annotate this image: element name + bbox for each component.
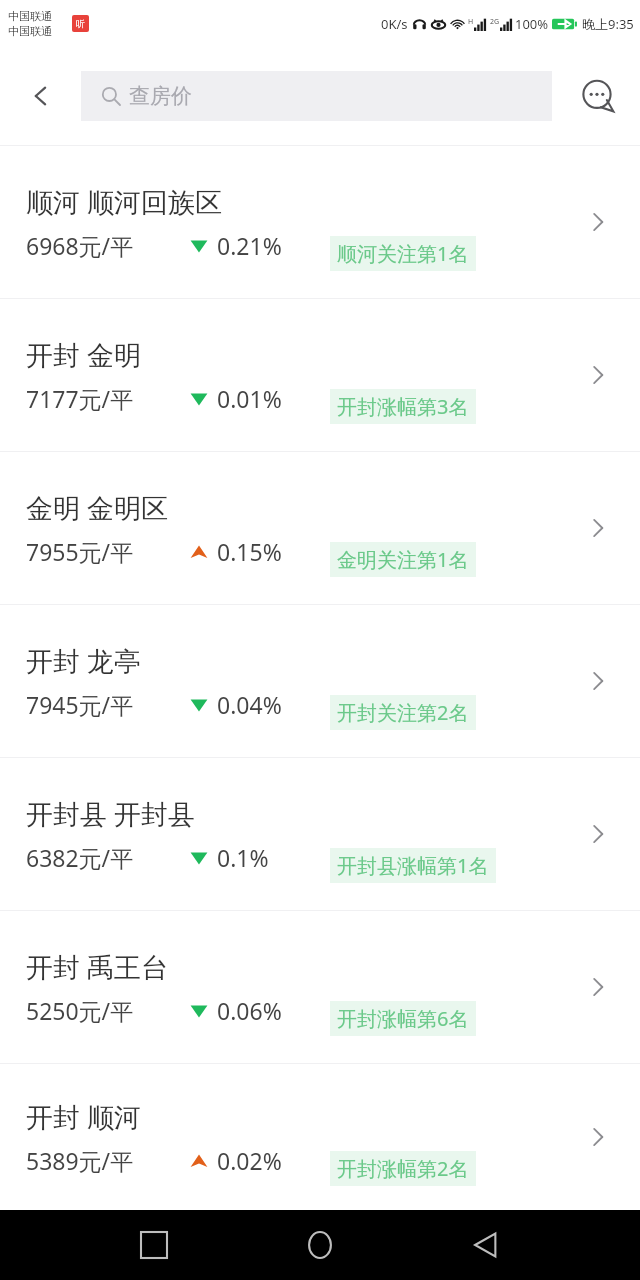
button[interactable]: 顺河 顺河回族区 [0, 146, 640, 298]
staticText: 7177元/平 [26, 383, 134, 414]
button[interactable]: 开封 龙亭 [0, 605, 640, 757]
staticText: 7945元/平 [26, 689, 134, 720]
button[interactable]: 查房价 [81, 71, 552, 121]
staticText: 听 [76, 18, 85, 29]
staticText: 0.1% [217, 842, 269, 873]
staticText: 开封 龙亭 [26, 642, 142, 679]
button[interactable]: 金明 金明区 [0, 452, 640, 604]
staticText: 开封 金明 [26, 336, 142, 373]
staticText: 5250元/平 [26, 995, 134, 1026]
button[interactable]: Home [296, 1221, 344, 1269]
staticText: 0.02% [217, 1145, 282, 1176]
staticText: 2G [490, 17, 500, 27]
button[interactable]: More [572, 70, 624, 122]
staticText: 查房价 [129, 83, 192, 109]
staticText: 金明 金明区 [26, 489, 169, 526]
staticText: 开封关注第2名 [337, 699, 469, 726]
button[interactable]: 开封 顺河 [0, 1064, 640, 1210]
button[interactable]: 开封县 开封县 [0, 758, 640, 910]
staticText: 0.21% [217, 230, 282, 261]
staticText: 金明关注第1名 [337, 546, 469, 573]
button[interactable]: Back [462, 1221, 510, 1269]
staticText: 中国联通 [8, 9, 52, 23]
staticText: 开封县 开封县 [26, 795, 196, 832]
staticText: 顺河 顺河回族区 [26, 183, 223, 220]
staticText: 0K/s [381, 15, 408, 33]
staticText: 开封涨幅第6名 [337, 1005, 469, 1032]
staticText: H [468, 17, 474, 27]
staticText: 0.06% [217, 995, 282, 1026]
staticText: 顺河关注第1名 [337, 240, 469, 267]
staticText: 6382元/平 [26, 842, 134, 873]
staticText: 7955元/平 [26, 536, 134, 567]
staticText: 中国联通 [8, 24, 52, 38]
staticText: 开封涨幅第3名 [337, 393, 469, 420]
staticText: 5389元/平 [26, 1145, 134, 1176]
staticText: 开封县涨幅第1名 [337, 852, 489, 879]
staticText: 0.15% [217, 536, 282, 567]
button[interactable]: 开封 金明 [0, 299, 640, 451]
staticText: 0.04% [217, 689, 282, 720]
button[interactable]: Back [14, 69, 68, 123]
staticText: 开封 顺河 [26, 1098, 142, 1135]
staticText: 开封涨幅第2名 [337, 1155, 469, 1182]
button[interactable]: Recents [130, 1221, 178, 1269]
staticText: 100% [515, 15, 549, 33]
staticText: 开封 禹王台 [26, 948, 169, 985]
staticText: 晚上9:35 [582, 15, 634, 33]
staticText: 0.01% [217, 383, 282, 414]
staticText: 6968元/平 [26, 230, 134, 261]
button[interactable]: 开封 禹王台 [0, 911, 640, 1063]
